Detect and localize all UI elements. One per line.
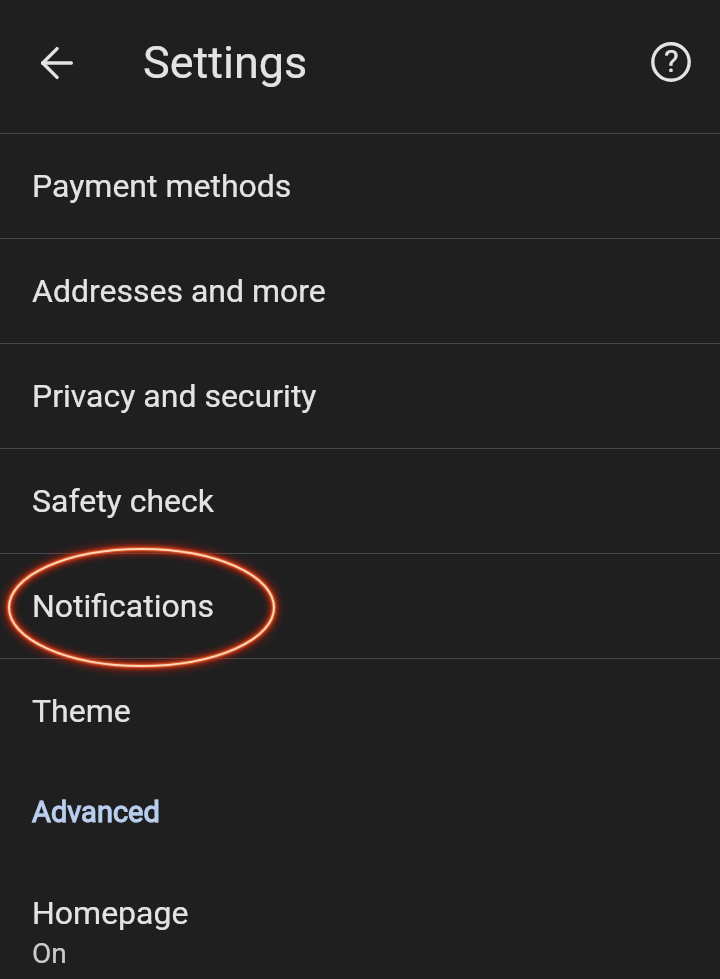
staticText: ?	[664, 43, 679, 79]
button[interactable]: Theme	[0, 659, 720, 763]
button[interactable]: Help	[640, 31, 702, 93]
button[interactable]: Advanced	[0, 763, 720, 867]
button[interactable]: Payment methods	[0, 134, 720, 238]
staticText: On	[32, 937, 67, 970]
button[interactable]: Addresses and more	[0, 239, 720, 343]
staticText: Settings	[143, 36, 308, 89]
button[interactable]: Safety check	[0, 449, 720, 553]
button[interactable]: Privacy and security	[0, 344, 720, 448]
staticText: Advanced	[32, 795, 160, 829]
staticText: Theme	[32, 692, 131, 730]
staticText: Privacy and security	[32, 377, 317, 415]
staticText: Safety check	[32, 482, 214, 520]
staticText: Homepage	[32, 894, 189, 932]
button[interactable]: Back	[26, 31, 88, 93]
button[interactable]: Notifications	[0, 554, 720, 658]
staticText: Payment methods	[32, 167, 292, 205]
button[interactable]: Homepage	[0, 873, 720, 979]
staticText: Notifications	[32, 587, 214, 625]
staticText: Addresses and more	[32, 272, 326, 310]
